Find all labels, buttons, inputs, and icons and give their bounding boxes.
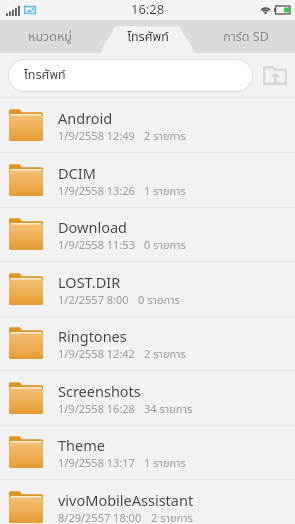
staticText: 16:28 <box>131 0 165 20</box>
staticText: 8/29/2557 18:00 <box>58 510 142 524</box>
staticText: 1 รายการ <box>144 455 186 472</box>
staticText: โทรศัพท์ <box>24 66 66 85</box>
button[interactable]: Download <box>0 207 295 262</box>
button[interactable]: Theme <box>0 425 295 480</box>
staticText: 2 รายการ <box>144 128 186 145</box>
button[interactable]: โทรศัพท์ <box>99 20 197 53</box>
staticText: 1/9/2558 16:28 <box>58 401 135 418</box>
staticText: 2 รายการ <box>151 510 193 524</box>
button[interactable]: การ์ด SD <box>197 20 295 53</box>
button[interactable]: หมวดหมู่ <box>0 20 99 53</box>
staticText: Screenshots <box>58 382 141 404</box>
staticText: Download <box>58 218 127 240</box>
staticText: 1/9/2558 12:49 <box>58 128 135 145</box>
button[interactable]: Screenshots <box>0 371 295 426</box>
staticText: 0 รายการ <box>144 237 186 254</box>
staticText: 1/9/2558 13:26 <box>58 183 135 200</box>
staticText: Android <box>58 109 113 131</box>
button[interactable]: DCIM <box>0 153 295 208</box>
staticText: โทรศัพท์ <box>127 28 169 47</box>
staticText: 2 รายการ <box>144 346 186 363</box>
staticText: 34 รายการ <box>144 401 193 418</box>
button[interactable]: Go up one folder <box>261 57 289 93</box>
staticText: 1 รายการ <box>144 183 186 200</box>
staticText: DCIM <box>58 164 96 186</box>
staticText: vivoMobileAssistant <box>58 491 194 513</box>
staticText: หมวดหมู่ <box>28 28 72 47</box>
staticText: Theme <box>58 436 105 458</box>
button[interactable]: vivoMobileAssistant <box>0 480 295 524</box>
button[interactable]: LOST.DIR <box>0 262 295 317</box>
staticText: LOST.DIR <box>58 273 121 295</box>
staticText: 1/2/2557 8:00 <box>58 292 129 309</box>
button[interactable]: Ringtones <box>0 316 295 371</box>
staticText: 1/9/2558 13:17 <box>58 455 135 472</box>
staticText: การ์ด SD <box>223 28 269 47</box>
button[interactable]: โทรศัพท์ <box>9 60 252 91</box>
staticText: 0 รายการ <box>138 292 180 309</box>
staticText: 1/9/2558 11:53 <box>58 237 135 254</box>
staticText: Ringtones <box>58 327 127 349</box>
staticText: 1/9/2558 12:42 <box>58 346 135 363</box>
button[interactable]: Android <box>0 98 295 153</box>
